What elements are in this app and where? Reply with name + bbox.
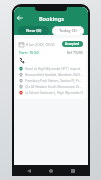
staticText: Today (3) <box>59 28 77 34</box>
button[interactable]: Qtr 44 Newton South Normanton Urban... <box>19 84 83 90</box>
button[interactable]: Home <box>46 166 56 176</box>
staticText: Ref 79200 <box>67 50 83 55</box>
staticText: Qtr 44 Newton South Normanton Urban... <box>25 85 83 89</box>
button[interactable]: Prestbury Park Station, Station Pl, Pres… <box>19 78 83 84</box>
staticText: Le School Stationers, High Wycombe H <box>25 91 83 95</box>
button[interactable]: Back <box>24 166 34 176</box>
button[interactable]: Le School Stationers, High Wycombe H <box>19 90 83 96</box>
button[interactable]: Today (3) <box>52 26 84 36</box>
button[interactable]: Hotel at High Wycombe HP11 stop at <box>19 66 83 72</box>
staticText: Prestbury Park Station, Station Pl, Pres… <box>25 79 83 83</box>
staticText: Bookings <box>39 15 64 22</box>
button[interactable]: Call <box>19 57 26 64</box>
staticText: Hotel at High Wycombe HP11 stop at <box>25 67 81 71</box>
button[interactable]: Accepted <box>62 41 83 47</box>
button[interactable]: Beaconsfield Amdale, Aberdeen Rd S... <box>19 72 83 78</box>
staticText: Accepted <box>65 42 80 46</box>
staticText: New (0) <box>26 28 42 34</box>
button[interactable]: Recent apps <box>68 166 78 176</box>
button[interactable]: New (0) <box>18 26 49 36</box>
button[interactable]: Back <box>14 12 26 24</box>
button[interactable]: 8 Jun 2023, 09:00 <box>16 38 86 99</box>
staticText: 8 Jun 2023, 09:00 <box>26 42 55 47</box>
staticText: Beaconsfield Amdale, Aberdeen Rd S... <box>25 73 83 77</box>
staticText: Fare: 15.50 <box>19 50 39 55</box>
